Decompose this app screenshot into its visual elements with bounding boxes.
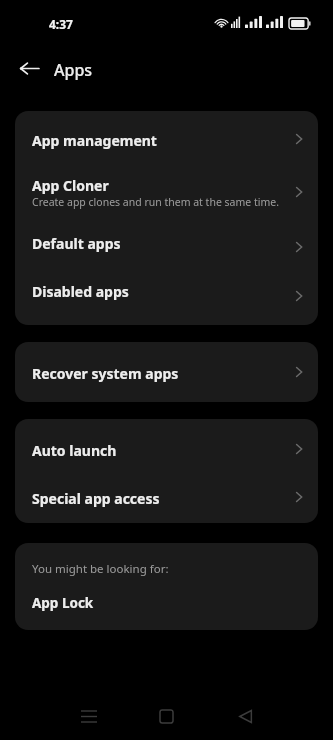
button[interactable]: Back [225, 696, 265, 736]
button[interactable]: Back [10, 49, 50, 89]
button[interactable]: Home [146, 696, 186, 736]
staticText: Auto launch [32, 441, 117, 460]
button[interactable] [15, 223, 318, 271]
staticText: You might be looking for: [32, 561, 169, 577]
staticText: Apps [54, 59, 93, 81]
staticText: App Cloner [32, 176, 109, 195]
staticText: 4:37 [49, 16, 73, 32]
button[interactable] [15, 342, 318, 402]
button[interactable] [15, 271, 318, 325]
staticText: Default apps [32, 234, 121, 253]
button[interactable] [15, 161, 318, 223]
staticText: Recover system apps [32, 364, 179, 383]
staticText: App Lock [32, 594, 94, 612]
button[interactable]: Recent apps [69, 696, 109, 736]
staticText: App management [32, 131, 157, 150]
staticText: Create app clones and run them at the sa… [32, 195, 279, 209]
button[interactable] [15, 111, 318, 161]
staticText: Special app access [32, 489, 160, 508]
button[interactable]: App Lock [15, 586, 318, 630]
staticText: Disabled apps [32, 282, 129, 301]
button[interactable] [15, 471, 318, 523]
button[interactable] [15, 419, 318, 471]
